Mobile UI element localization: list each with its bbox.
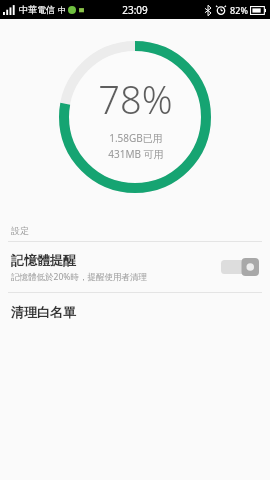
staticText: 23:09	[122, 3, 148, 17]
staticText: 1.58GB已用	[109, 131, 163, 145]
staticText: 記憶體提醒	[11, 252, 76, 268]
staticText: 431MB 可用	[108, 147, 164, 161]
button[interactable]: 記憶體提醒	[0, 242, 270, 292]
button[interactable]: 記憶體提醒開關	[221, 258, 259, 276]
staticText: 記憶體低於20%時，提醒使用者清理	[11, 271, 147, 283]
staticText: 82%	[230, 4, 248, 16]
staticText: 中	[58, 5, 66, 15]
button[interactable]: 清理白名單	[0, 293, 270, 331]
staticText: 78%	[98, 73, 173, 125]
staticText: 中華電信	[19, 4, 55, 15]
staticText: 設定	[11, 225, 29, 236]
staticText: 清理白名單	[11, 304, 76, 320]
